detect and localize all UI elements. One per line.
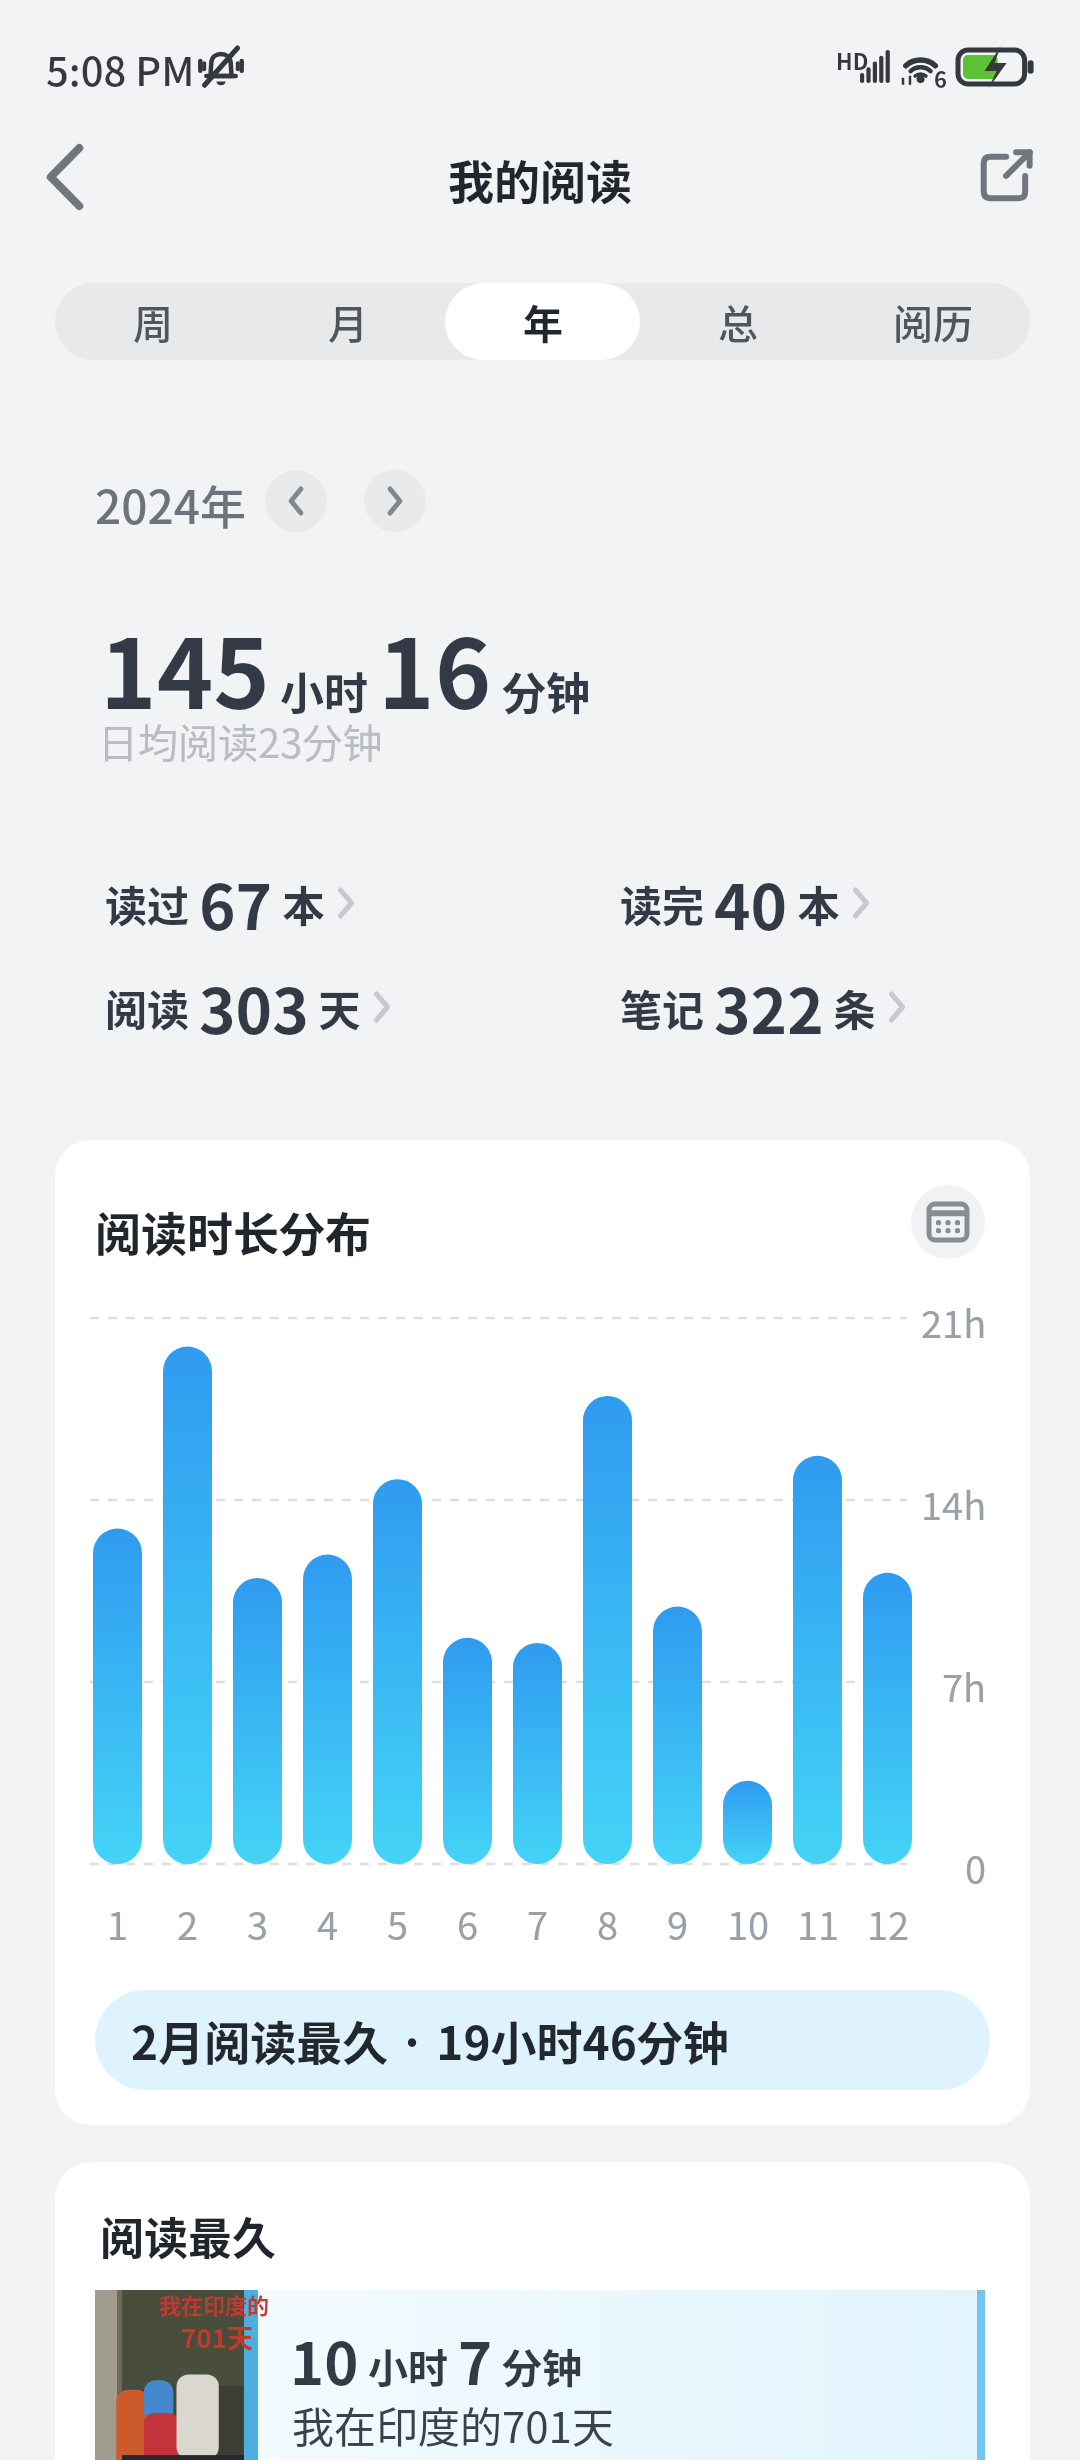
staticText: 322 [714,962,824,1052]
staticText: 145 [100,598,270,737]
staticText: 40 [714,858,788,948]
staticText: HD [836,44,869,76]
staticText: 303 [199,962,309,1052]
staticText: 我的阅读 [448,146,632,213]
button[interactable]: 笔记 [620,962,904,1052]
staticText: 14h [921,1476,987,1524]
staticText: 21h [921,1294,987,1342]
staticText: 年 [523,293,563,351]
staticText: 2024年 [95,471,246,538]
staticText: 0 [965,1840,987,1888]
staticText: 分钟 [492,659,590,723]
staticText: 7h [942,1658,987,1706]
button[interactable] [911,1185,985,1259]
button[interactable]: 阅历 [835,283,1030,360]
staticText: 8 [597,1896,619,1944]
button[interactable] [265,470,327,532]
staticText: 阅读最久 [100,2204,276,2268]
staticText: 11 [797,1896,840,1944]
button[interactable]: 读完 [620,858,868,948]
staticText: 5 [387,1896,409,1944]
button[interactable]: 年 [445,283,640,360]
staticText: 本 [273,873,325,934]
button[interactable] [960,118,1050,236]
button[interactable]: 读过 [105,858,353,948]
staticText: 日均阅读23分钟 [98,712,383,770]
staticText: 小时 [359,2337,458,2395]
button[interactable]: 周 [55,283,250,360]
staticText: 10 [290,2318,359,2402]
staticText: 我在印度的701天 [292,2394,614,2455]
staticText: 67 [199,858,273,948]
button[interactable] [30,118,100,236]
staticText: 读过 [105,873,199,934]
button[interactable]: 月 [250,283,445,360]
staticText: 2 [177,1896,199,1944]
staticText: 7 [527,1896,549,1944]
staticText: 4 [317,1896,339,1944]
staticText: 天 [309,977,361,1038]
staticText: 9 [667,1896,689,1944]
staticText: 小时 [270,659,378,723]
staticText: 7 [458,2318,493,2402]
staticText: 阅读时长分布 [95,1198,371,1265]
button[interactable]: 2月阅读最久 · 19小时46分钟 [95,1990,990,2090]
staticText: 12 [867,1896,910,1944]
button[interactable]: 阅读 [105,962,389,1052]
staticText: 本 [788,873,840,934]
staticText: 分钟 [493,2337,583,2395]
button[interactable] [364,470,426,532]
staticText: 1 [107,1896,129,1944]
staticText: 总 [718,293,758,351]
staticText: 16 [378,598,492,737]
staticText: 阅读 [105,977,199,1038]
staticText: 701天 [181,2318,254,2356]
staticText: 我在印度的 [159,2288,270,2320]
staticText: 10 [727,1896,770,1944]
staticText: 6 [457,1896,479,1944]
staticText: 读完 [620,873,714,934]
staticText: 周 [133,293,173,351]
staticText: 5:08 PM [46,40,195,98]
staticText: 6 [934,62,947,94]
staticText: 条 [824,977,876,1038]
button[interactable]: 总 [640,283,835,360]
staticText: 2月阅读最久 · 19小时46分钟 [131,2007,729,2074]
button[interactable]: 10 [95,2290,985,2460]
staticText: 笔记 [620,977,714,1038]
staticText: 3 [247,1896,269,1944]
staticText: 月 [328,293,368,351]
staticText: 阅历 [893,293,973,351]
